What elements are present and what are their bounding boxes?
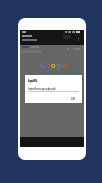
staticText: e [63, 60, 68, 70]
staticText: l [61, 60, 63, 70]
button[interactable]: OK [70, 96, 76, 101]
staticText: https://www.google.co.kr/ [28, 86, 56, 91]
staticText: Input URL [28, 78, 37, 83]
staticText: o [46, 60, 51, 70]
staticText: G [40, 60, 46, 70]
staticText: OK [71, 96, 75, 101]
staticText: o [51, 60, 56, 70]
staticText: g [56, 60, 61, 70]
